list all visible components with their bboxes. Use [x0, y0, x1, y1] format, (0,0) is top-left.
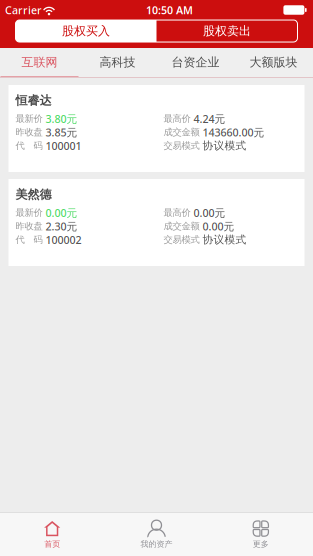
- staticText: 2.30元: [45, 219, 77, 233]
- button[interactable]: 台资企业: [156, 48, 234, 78]
- staticText: 成交金额: [163, 126, 199, 138]
- button[interactable]: 更多: [209, 513, 313, 556]
- staticText: 143660.00元: [202, 125, 264, 139]
- staticText: 最新价: [15, 113, 42, 124]
- button[interactable]: 大额版块: [234, 48, 312, 78]
- staticText: Carrier: [5, 3, 42, 17]
- button[interactable]: 互联网: [0, 48, 78, 78]
- staticText: 交易模式: [163, 234, 199, 245]
- staticText: 首页: [44, 539, 60, 549]
- button[interactable]: 股权买入: [15, 20, 156, 42]
- staticText: 最新价: [15, 207, 42, 218]
- staticText: 3.85元: [45, 125, 77, 139]
- staticText: 交易模式: [163, 140, 199, 151]
- staticText: 4.24元: [193, 112, 225, 126]
- staticText: 高科技: [99, 55, 135, 70]
- staticText: 代 码: [15, 234, 42, 245]
- button[interactable]: 首页: [0, 513, 104, 556]
- staticText: 昨收盘: [15, 220, 42, 232]
- staticText: 代 码: [15, 140, 42, 151]
- staticText: 0.00元: [202, 219, 234, 233]
- staticText: 大额版块: [249, 55, 297, 70]
- staticText: 0.00元: [193, 206, 225, 220]
- button[interactable]: 股权卖出: [156, 20, 297, 42]
- staticText: 更多: [253, 539, 269, 549]
- staticText: 台资企业: [171, 55, 219, 70]
- staticText: 恒睿达: [15, 93, 51, 108]
- staticText: 100001: [45, 139, 81, 153]
- staticText: 我的资产: [140, 539, 172, 549]
- staticText: 最高价: [163, 113, 190, 124]
- button[interactable]: 高科技: [78, 48, 156, 78]
- staticText: 100002: [45, 233, 81, 247]
- button[interactable]: 我的资产: [104, 513, 209, 556]
- staticText: 3.80元: [45, 112, 77, 126]
- staticText: 股权卖出: [203, 24, 251, 38]
- staticText: 美然德: [15, 187, 51, 202]
- staticText: 成交金额: [163, 220, 199, 232]
- staticText: 互联网: [21, 55, 57, 70]
- staticText: 最高价: [163, 207, 190, 218]
- staticText: 协议模式: [202, 139, 246, 152]
- staticText: 昨收盘: [15, 126, 42, 138]
- staticText: 10:50 AM: [146, 3, 193, 17]
- staticText: 股权买入: [62, 24, 110, 38]
- staticText: 0.00元: [45, 206, 77, 220]
- staticText: 协议模式: [202, 233, 246, 246]
